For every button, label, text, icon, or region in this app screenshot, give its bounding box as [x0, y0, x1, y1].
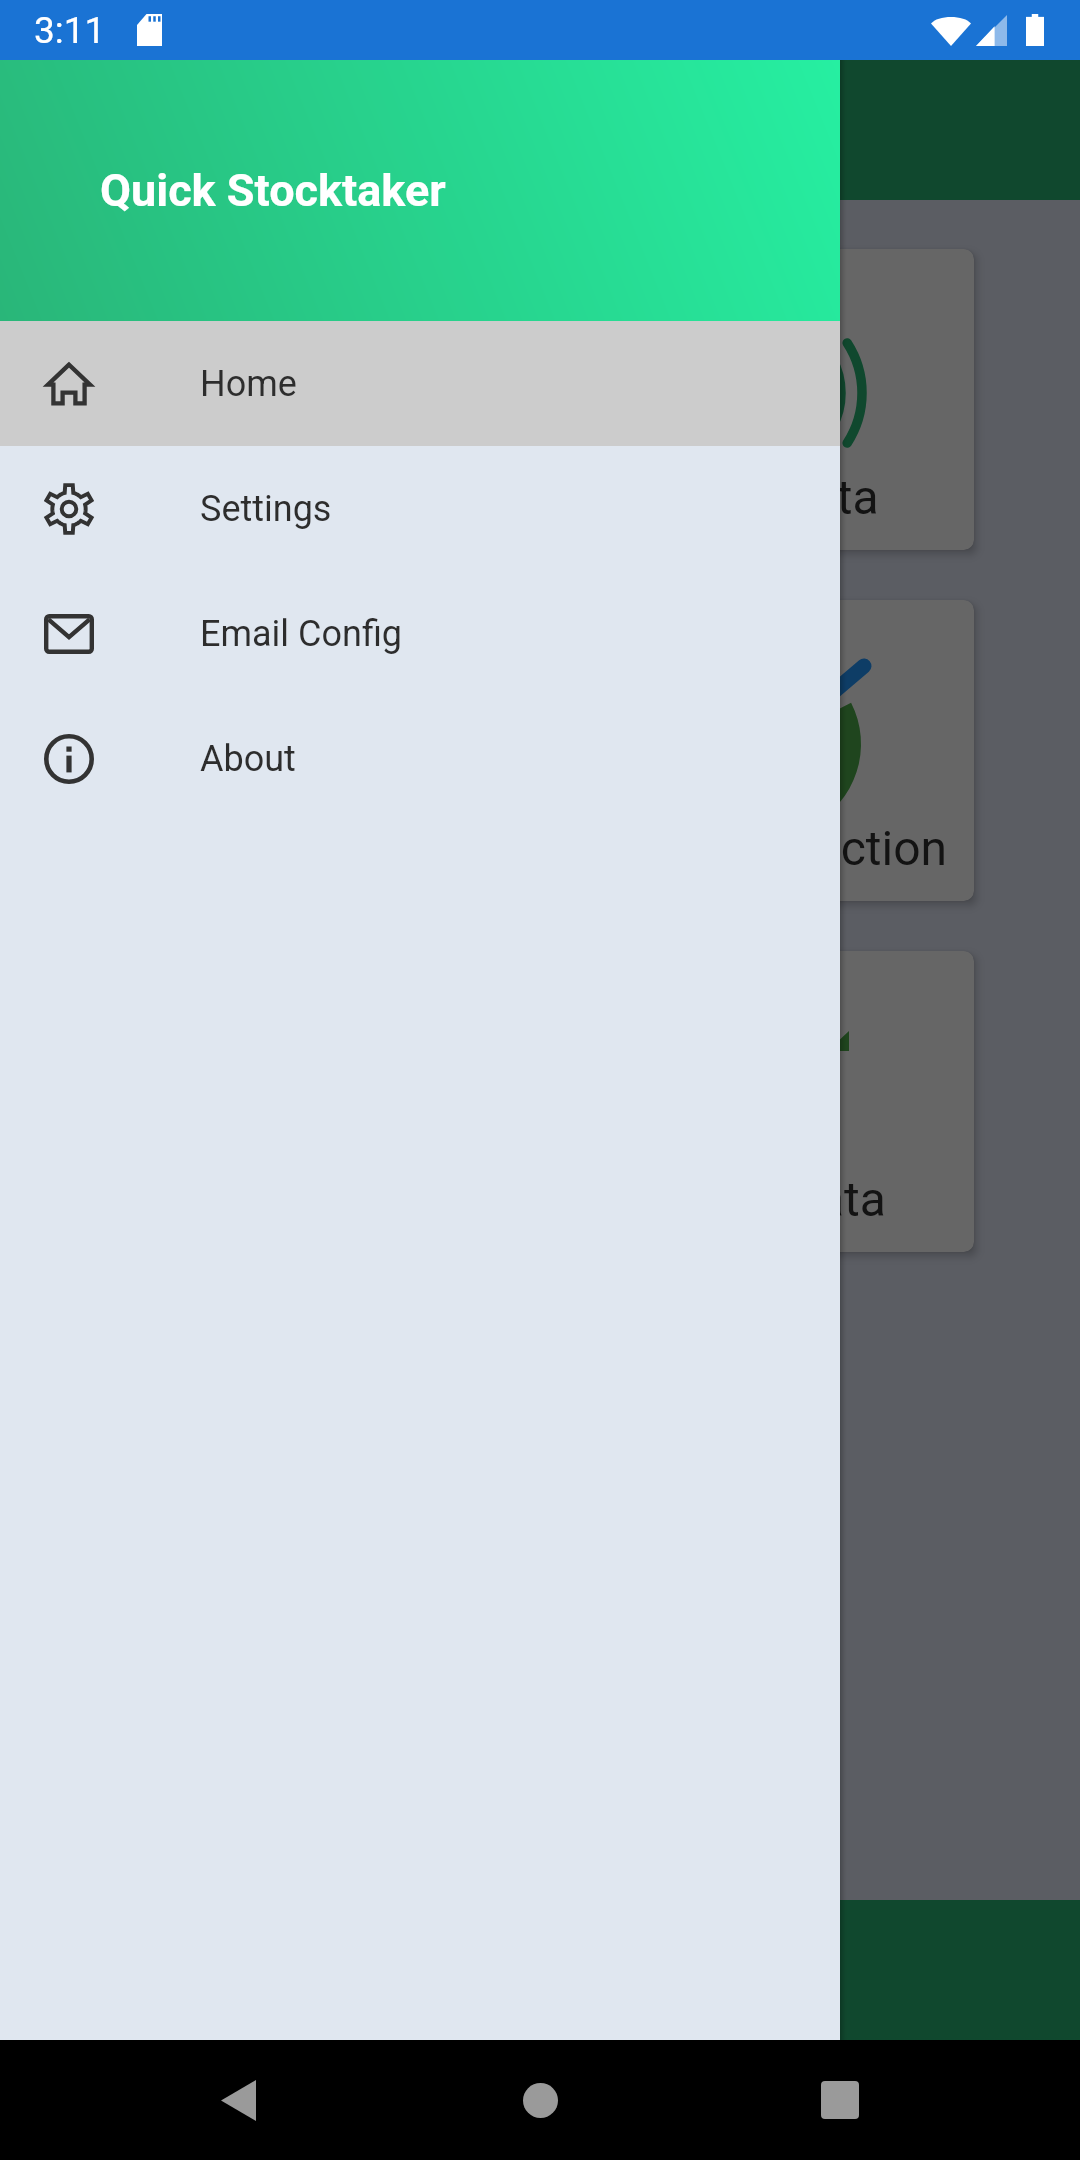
staticText: Quick Stocktaker: [100, 164, 446, 217]
button[interactable]: Stock Data: [565, 951, 974, 1252]
button[interactable]: About: [0, 696, 840, 821]
button[interactable]: Stock Correction: [565, 600, 974, 901]
button[interactable]: Scan Data: [565, 249, 974, 550]
staticText: About: [200, 738, 296, 780]
button[interactable]: Stock Report: [106, 600, 515, 901]
button[interactable]: Home: [495, 2055, 585, 2145]
staticText: Email Config: [200, 613, 403, 655]
staticText: Home: [200, 363, 297, 405]
button[interactable]: Close navigation drawer: [0, 0, 1080, 2160]
staticText: Scan Data: [661, 469, 879, 525]
staticText: 3:11: [34, 9, 106, 52]
staticText: Settings: [200, 488, 332, 530]
button[interactable]: New Count: [106, 249, 515, 550]
button[interactable]: Settings: [0, 446, 840, 571]
button[interactable]: Home: [0, 321, 840, 446]
staticText: Stock Data: [654, 1171, 886, 1227]
staticText: New Count: [193, 469, 428, 525]
button[interactable]: Recent apps: [795, 2055, 885, 2145]
staticText: Stock Correction: [592, 820, 948, 876]
button[interactable]: Email Config: [0, 571, 840, 696]
button[interactable]: Back: [193, 2055, 283, 2145]
